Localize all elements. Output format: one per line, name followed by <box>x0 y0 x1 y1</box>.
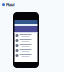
button[interactable] <box>14 38 37 43</box>
button[interactable] <box>14 48 37 53</box>
button[interactable]: Plaid home <box>2 2 15 7</box>
button[interactable] <box>14 53 37 58</box>
button[interactable] <box>14 43 37 48</box>
staticText: Plaid <box>6 2 15 7</box>
button[interactable] <box>14 33 37 38</box>
